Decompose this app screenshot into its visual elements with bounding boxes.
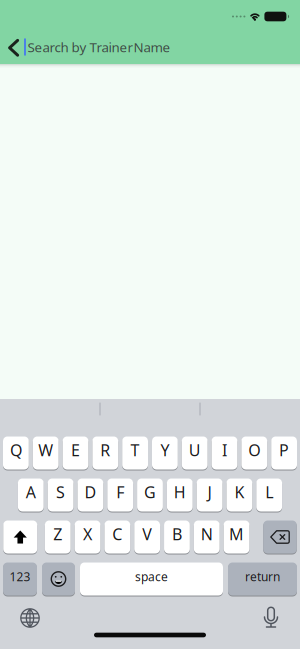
staticText: H — [174, 481, 186, 503]
button[interactable]: G — [137, 478, 163, 512]
button[interactable]: O — [241, 436, 267, 470]
staticText: S — [56, 481, 65, 503]
staticText: N — [201, 523, 213, 545]
staticText: T — [131, 439, 140, 461]
staticText: I — [222, 439, 227, 461]
button[interactable]: H — [167, 478, 193, 512]
button[interactable]: A — [18, 478, 44, 512]
button[interactable]: Search by TrainerName — [24, 35, 170, 59]
button[interactable]: F — [107, 478, 133, 512]
staticText: J — [208, 481, 212, 503]
button[interactable]: Y — [152, 436, 178, 470]
button[interactable]: U — [182, 436, 208, 470]
button[interactable]: K — [226, 478, 252, 512]
staticText: X — [83, 523, 92, 545]
button[interactable]: D — [77, 478, 103, 512]
staticText: G — [144, 481, 156, 503]
button[interactable]: N — [194, 520, 220, 554]
staticText: B — [172, 523, 182, 545]
staticText: L — [265, 481, 273, 503]
button[interactable]: Back — [4, 36, 24, 60]
button[interactable]: V — [134, 520, 160, 554]
button[interactable]: Z — [45, 520, 71, 554]
staticText: F — [116, 481, 124, 503]
button[interactable]: W — [33, 436, 59, 470]
button[interactable]: 123 — [3, 562, 37, 596]
button[interactable]: I — [212, 436, 237, 470]
button[interactable]: Next keyboard — [15, 603, 45, 633]
staticText: E — [71, 439, 80, 461]
staticText: Search by TrainerName — [27, 38, 170, 56]
staticText: A — [26, 481, 36, 503]
button[interactable]: C — [104, 520, 130, 554]
button[interactable]: Delete — [263, 520, 297, 554]
button[interactable]: return — [228, 562, 297, 596]
button[interactable]: P — [271, 436, 297, 470]
button[interactable]: J — [197, 478, 222, 512]
staticText: return — [245, 568, 280, 584]
button[interactable]: R — [92, 436, 118, 470]
button[interactable]: Q — [3, 436, 29, 470]
staticText: P — [279, 439, 289, 461]
staticText: C — [112, 523, 122, 545]
button[interactable]: Emoji — [42, 562, 75, 596]
button[interactable]: space — [80, 562, 223, 596]
staticText: D — [84, 481, 96, 503]
staticText: 123 — [9, 568, 30, 584]
button[interactable]: M — [224, 520, 249, 554]
button[interactable]: E — [63, 436, 88, 470]
button[interactable]: Shift — [3, 520, 37, 554]
staticText: U — [189, 439, 201, 461]
staticText: V — [142, 523, 152, 545]
staticText: M — [229, 523, 244, 545]
staticText: K — [234, 481, 244, 503]
button[interactable]: B — [164, 520, 190, 554]
staticText: O — [248, 439, 260, 461]
staticText: Q — [10, 439, 22, 461]
staticText: W — [38, 439, 53, 461]
staticText: space — [135, 568, 168, 584]
staticText: Z — [53, 523, 62, 545]
staticText: R — [100, 439, 110, 461]
staticText: Y — [160, 439, 169, 461]
button[interactable]: T — [122, 436, 148, 470]
button[interactable]: Dictate — [256, 602, 286, 632]
button[interactable]: L — [256, 478, 282, 512]
button[interactable]: S — [48, 478, 73, 512]
button[interactable]: X — [75, 520, 100, 554]
